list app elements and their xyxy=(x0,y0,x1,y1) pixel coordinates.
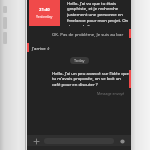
button[interactable]: OK. Pas de problème, Je suis au bar xyxy=(27,29,131,38)
button[interactable]: Send xyxy=(118,137,126,145)
staticText: Yesterday xyxy=(36,14,53,19)
button[interactable]: 21:40 xyxy=(27,0,131,26)
staticText: Hello. J'ai vu que tu étais graphiste, e… xyxy=(67,0,131,26)
staticText: OK. Pas de problème, Je suis au bar xyxy=(52,31,124,37)
button[interactable]: Hello. J'ai un peu avancé sur l'idée que… xyxy=(27,70,131,88)
staticText: Hello. J'ai un peu avancé sur l'idée que… xyxy=(52,70,129,88)
button[interactable]: Attach xyxy=(27,135,131,146)
staticText: 21:40 xyxy=(39,7,50,13)
button[interactable]: J'arrive :) xyxy=(27,43,131,52)
button[interactable]: Today xyxy=(74,58,85,63)
button[interactable]: Attach xyxy=(32,137,40,145)
staticText: Today xyxy=(74,58,85,63)
staticText: Message envoyé xyxy=(97,91,125,96)
staticText: J'arrive :) xyxy=(32,45,50,51)
